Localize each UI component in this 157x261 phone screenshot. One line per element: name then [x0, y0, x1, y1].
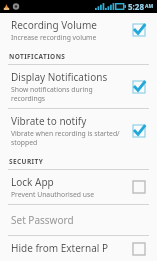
staticText: Vibrate to notify [11, 114, 87, 128]
button[interactable]: Lock App [0, 170, 157, 204]
staticText: Hide from External P [11, 241, 108, 255]
button[interactable]: Vibrate to notify [0, 109, 157, 152]
button[interactable]: Recording Volume [0, 13, 157, 47]
button[interactable]: Disabled checkbox [129, 177, 149, 197]
staticText: NOTIFICATIONS [9, 52, 66, 61]
staticText: Lock App [11, 175, 54, 189]
button[interactable]: Disabled checkbox [129, 241, 149, 256]
staticText: AM [145, 3, 154, 10]
button[interactable]: Display Notifications [0, 65, 157, 108]
staticText: 5:28 [128, 1, 144, 12]
button[interactable]: Hide from External P [0, 236, 157, 261]
staticText: Prevent Unauthorised use [11, 190, 95, 199]
button[interactable]: Enabled checkbox [129, 121, 149, 141]
button[interactable]: Set Password [0, 205, 157, 235]
staticText: Recording Volume [11, 18, 97, 32]
button[interactable]: Enabled checkbox [129, 20, 149, 40]
staticText: Show notifications during recordings [11, 85, 125, 103]
staticText: Increase recording volume [11, 33, 97, 42]
staticText: SECURITY [9, 157, 44, 166]
staticText: Display Notifications [11, 70, 108, 84]
staticText: Set Password [11, 213, 74, 227]
staticText: Vibrate when recording is started/stoppe… [11, 129, 125, 147]
button[interactable]: Enabled checkbox [129, 77, 149, 97]
